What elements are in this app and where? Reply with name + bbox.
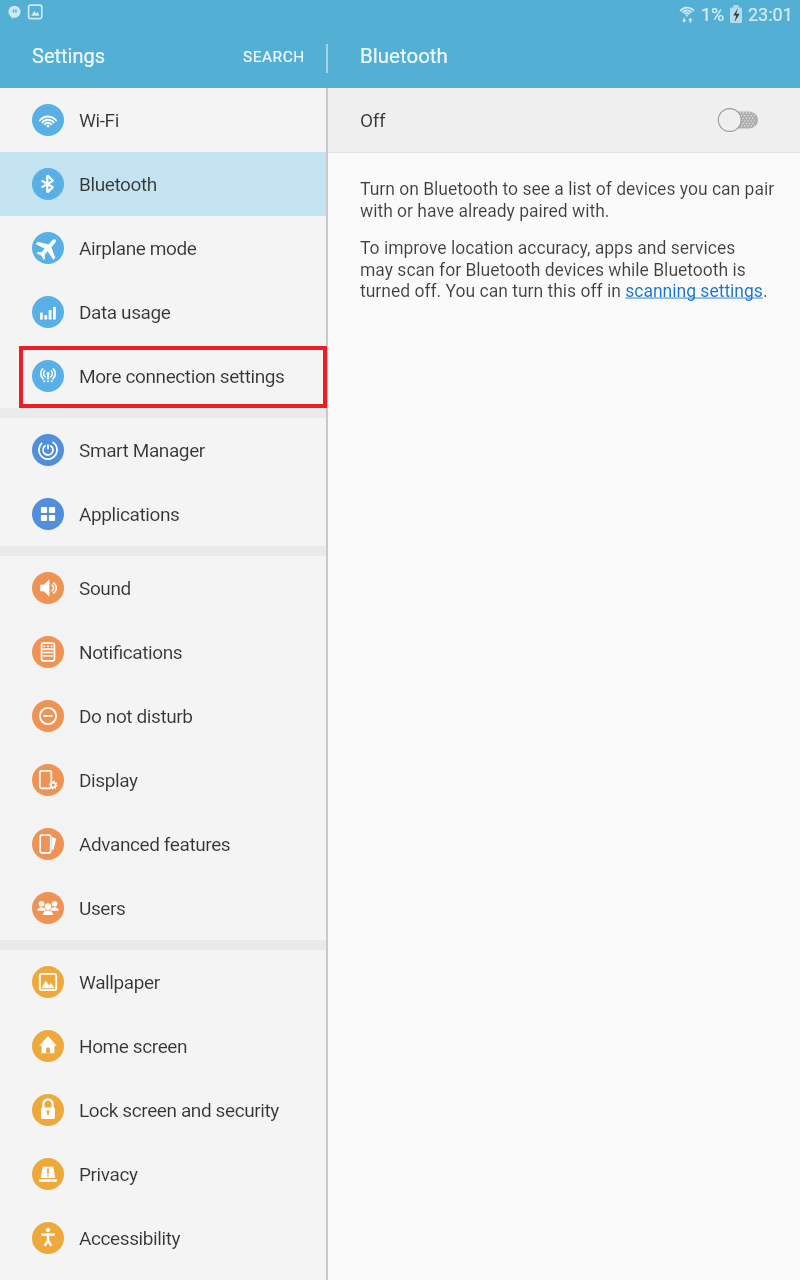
staticText: Wallpaper xyxy=(79,971,160,993)
button[interactable]: Wi-Fi xyxy=(0,88,326,152)
staticText: Home screen xyxy=(79,1035,188,1057)
staticText: Users xyxy=(79,897,126,919)
staticText: Smart Manager xyxy=(79,439,205,461)
staticText: More connection settings xyxy=(79,365,285,387)
button[interactable]: More connection settings xyxy=(0,344,326,408)
button[interactable]: Accessibility xyxy=(0,1206,326,1270)
staticText: 23:01 xyxy=(748,4,793,25)
staticText: 1% xyxy=(701,4,725,25)
staticText: Accessibility xyxy=(79,1227,181,1249)
staticText: Advanced features xyxy=(79,833,231,855)
staticText: Data usage xyxy=(79,301,171,323)
staticText: Privacy xyxy=(79,1163,138,1185)
staticText: Lock screen and security xyxy=(79,1099,279,1121)
staticText: Wi-Fi xyxy=(79,109,119,131)
staticText: Off xyxy=(360,109,386,131)
button[interactable]: Applications xyxy=(0,482,326,546)
staticText: Sound xyxy=(79,577,131,599)
staticText: Applications xyxy=(79,503,180,525)
staticText: SEARCH xyxy=(243,48,305,66)
button[interactable]: Bluetooth xyxy=(0,152,326,216)
staticText: Do not disturb xyxy=(79,705,193,727)
button[interactable]: Data usage xyxy=(0,280,326,344)
staticText: To improve location accuracy, apps and s… xyxy=(360,238,772,301)
button[interactable]: Display xyxy=(0,748,326,812)
button[interactable]: Smart Manager xyxy=(0,418,326,482)
button[interactable]: Privacy xyxy=(0,1142,326,1206)
button[interactable]: Users xyxy=(0,876,326,940)
button[interactable]: Home screen xyxy=(0,1014,326,1078)
staticText: Bluetooth xyxy=(79,173,157,195)
button[interactable]: Advanced features xyxy=(0,812,326,876)
button[interactable]: Wallpaper xyxy=(0,950,326,1014)
button[interactable]: Do not disturb xyxy=(0,684,326,748)
button[interactable]: Airplane mode xyxy=(0,216,326,280)
other: Bluetooth toggle xyxy=(718,108,758,132)
staticText: Notifications xyxy=(79,641,183,663)
button[interactable]: Sound xyxy=(0,556,326,620)
button[interactable]: SEARCH xyxy=(233,39,315,77)
staticText: Turn on Bluetooth to see a list of devic… xyxy=(360,179,775,221)
button[interactable]: Settings xyxy=(0,47,106,70)
staticText: Airplane mode xyxy=(79,237,197,259)
staticText: Display xyxy=(79,769,138,791)
button[interactable]: Lock screen and security xyxy=(0,1078,326,1142)
button[interactable]: Notifications xyxy=(0,620,326,684)
button[interactable]: Off xyxy=(328,88,800,152)
staticText: Bluetooth xyxy=(360,44,448,68)
